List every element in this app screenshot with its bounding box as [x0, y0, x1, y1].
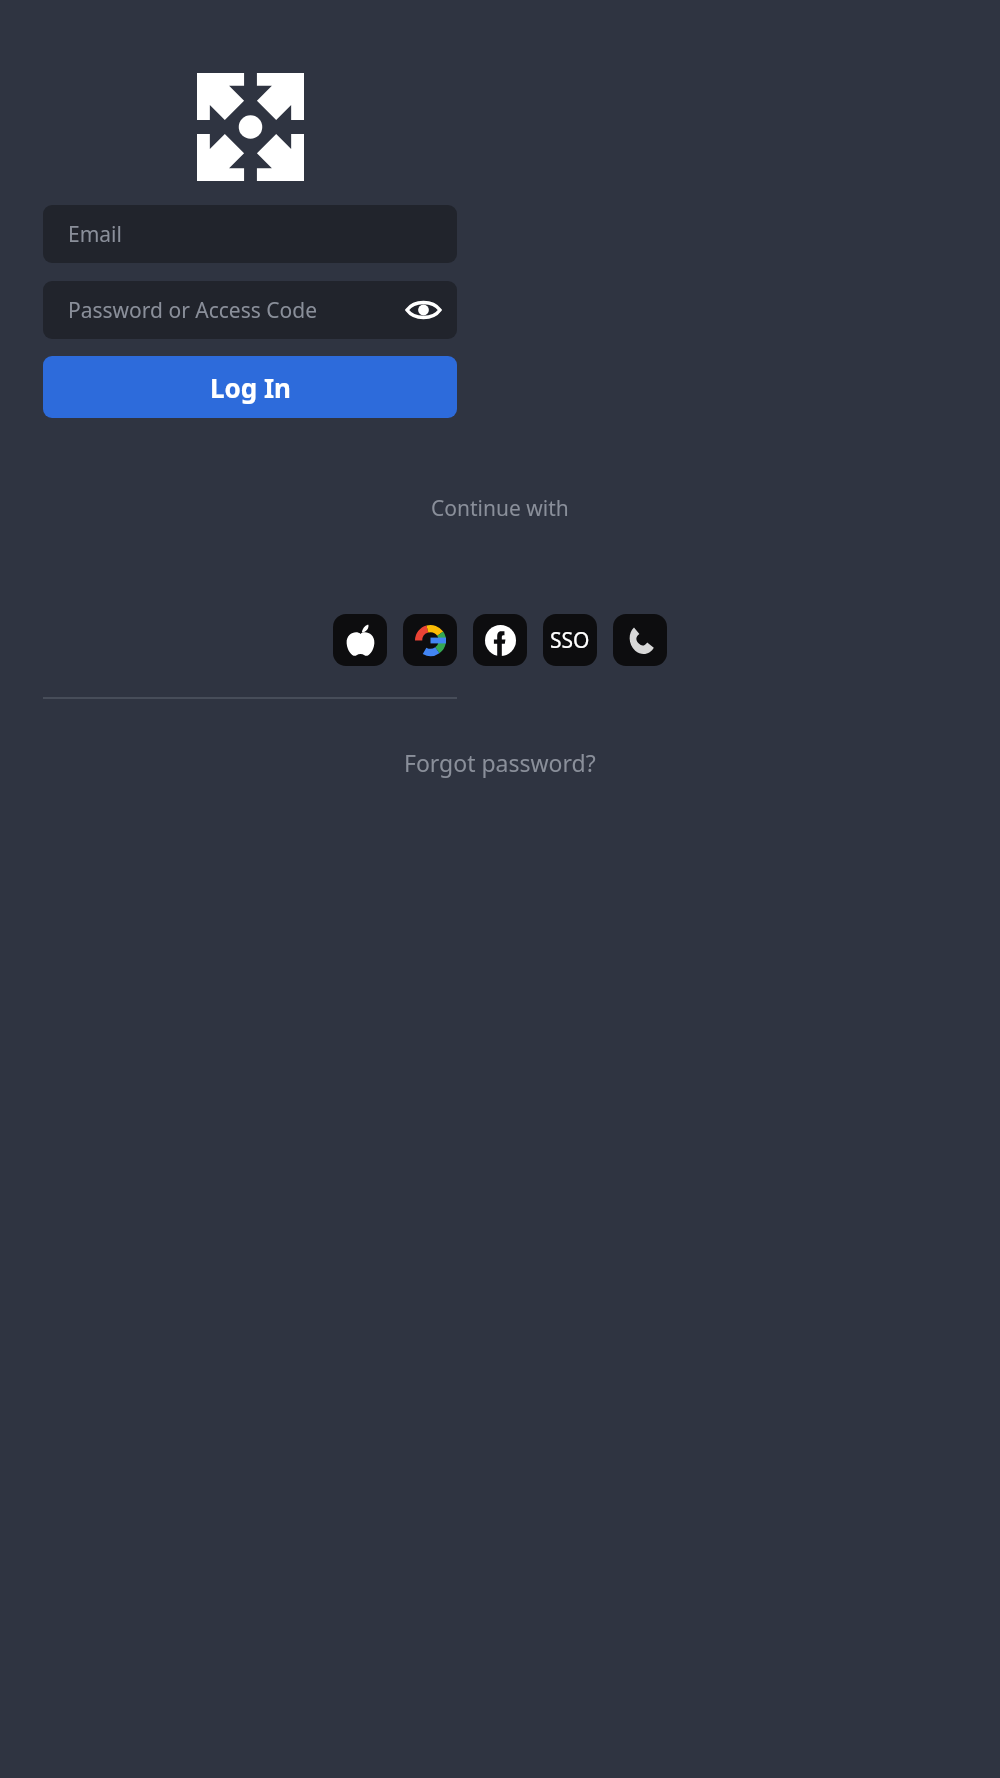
staticText: Log In — [210, 370, 291, 405]
staticText: Email — [68, 220, 122, 249]
staticText: Continue with — [431, 494, 569, 523]
button[interactable]: Show password — [400, 287, 446, 333]
staticText: Forgot password? — [404, 747, 596, 778]
button[interactable]: Continue with phone — [613, 614, 667, 666]
button[interactable]: Continue with SSO — [543, 614, 597, 666]
button[interactable]: Password or Access Code — [43, 281, 457, 339]
button[interactable]: Log In — [43, 356, 457, 418]
button[interactable]: Email — [43, 205, 457, 263]
button[interactable]: Continue with Apple — [333, 614, 387, 666]
button[interactable]: Continue with Google — [403, 614, 457, 666]
staticText: SSO — [550, 626, 590, 655]
button[interactable]: Continue with Facebook — [473, 614, 527, 666]
staticText: Password or Access Code — [68, 296, 318, 325]
button[interactable]: Forgot password? — [386, 738, 614, 787]
